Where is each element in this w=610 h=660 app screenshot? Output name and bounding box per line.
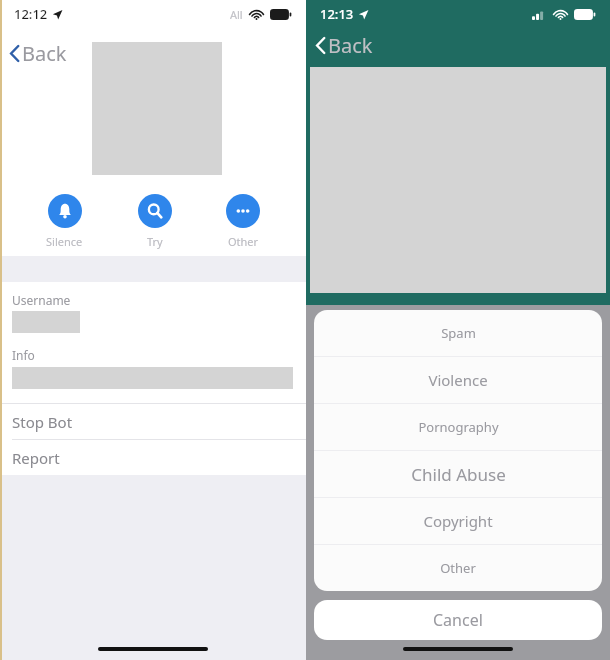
button[interactable]: Copyright — [314, 498, 602, 544]
button[interactable]: Spam — [314, 310, 602, 356]
button[interactable]: Violence — [314, 357, 602, 403]
staticText: Cancel — [433, 609, 483, 631]
staticText: Report — [12, 448, 60, 468]
staticText: 12:13 — [320, 5, 354, 23]
button[interactable]: Back — [6, 36, 71, 71]
staticText: Copyright — [423, 511, 493, 531]
staticText: Pornography — [418, 418, 499, 436]
staticText: Back — [22, 40, 67, 67]
button[interactable]: Other — [314, 545, 602, 591]
staticText: Silence — [46, 234, 83, 249]
button[interactable]: Child Abuse — [314, 451, 602, 497]
staticText: Username — [12, 292, 71, 308]
button[interactable]: Try — [130, 192, 180, 251]
staticText: 12:12 — [14, 5, 48, 23]
button[interactable]: Cancel — [314, 600, 602, 640]
button[interactable]: Other — [218, 192, 268, 251]
button[interactable]: Back — [312, 28, 377, 63]
button[interactable]: Report — [0, 440, 306, 475]
staticText: Child Abuse — [411, 463, 506, 486]
staticText: Other — [228, 234, 259, 249]
staticText: Info — [12, 347, 35, 363]
button[interactable]: Silence — [38, 192, 91, 251]
staticText: Back — [328, 32, 373, 59]
staticText: All — [230, 7, 243, 22]
staticText: Violence — [428, 370, 488, 390]
staticText: Other — [440, 559, 476, 577]
button[interactable]: Stop Bot — [0, 404, 306, 439]
button[interactable]: Pornography — [314, 404, 602, 450]
staticText: Spam — [441, 324, 476, 342]
staticText: Stop Bot — [12, 412, 73, 432]
staticText: Try — [147, 234, 163, 249]
